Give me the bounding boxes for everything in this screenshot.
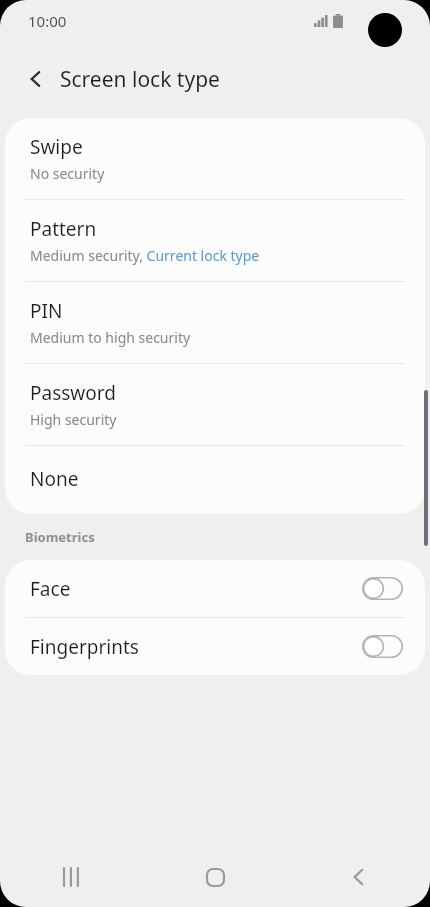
button[interactable]: Pattern bbox=[5, 200, 425, 281]
button[interactable]: Fingerprints bbox=[5, 618, 425, 675]
button[interactable]: Back bbox=[14, 57, 58, 101]
button[interactable]: Face toggle bbox=[362, 577, 403, 600]
button[interactable]: Password bbox=[5, 364, 425, 445]
button[interactable]: Swipe bbox=[5, 118, 425, 199]
staticText: Medium security, Current lock type bbox=[30, 246, 260, 265]
button[interactable]: PIN bbox=[5, 282, 425, 363]
staticText: Medium to high security bbox=[30, 328, 191, 347]
staticText: Face bbox=[30, 576, 362, 602]
button[interactable]: Recent apps bbox=[0, 847, 144, 907]
staticText: Pattern bbox=[30, 216, 97, 242]
staticText: No security bbox=[30, 164, 105, 183]
staticText: Fingerprints bbox=[30, 634, 362, 660]
button[interactable]: Fingerprints toggle bbox=[362, 635, 403, 658]
staticText: None bbox=[30, 466, 79, 492]
staticText: Password bbox=[30, 380, 116, 406]
button[interactable]: Home bbox=[144, 847, 287, 907]
button[interactable]: Back bbox=[287, 847, 430, 907]
button[interactable]: None bbox=[5, 446, 425, 514]
staticText: PIN bbox=[30, 298, 63, 324]
staticText: 10:00 bbox=[28, 11, 67, 31]
staticText: Screen lock type bbox=[60, 65, 220, 94]
staticText: Biometrics bbox=[25, 528, 95, 546]
staticText: Swipe bbox=[30, 134, 83, 160]
staticText: High security bbox=[30, 410, 117, 429]
button[interactable]: Face bbox=[5, 560, 425, 617]
